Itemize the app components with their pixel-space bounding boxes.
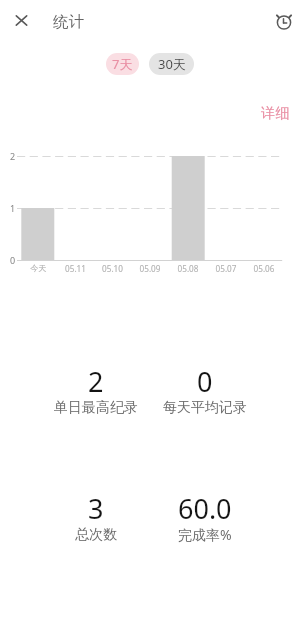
staticText: 05.09 (131, 263, 169, 274)
button[interactable]: 2 (41, 363, 150, 413)
button[interactable]: 3 (41, 490, 150, 540)
staticText: 7天 (112, 55, 133, 73)
button[interactable]: Close (8, 7, 35, 34)
staticText: 3 (88, 490, 104, 527)
staticText: 60.0 (178, 490, 232, 527)
staticText: 05.08 (169, 263, 207, 274)
staticText: 0 (197, 363, 213, 400)
staticText: 每天平均记录 (163, 399, 247, 417)
staticText: 完成率% (178, 526, 232, 545)
staticText: 05.06 (245, 263, 283, 274)
button[interactable]: 详细 (261, 104, 290, 122)
staticText: 详细 (261, 104, 290, 122)
button[interactable]: 0 (150, 363, 259, 413)
staticText: 单日最高纪录 (54, 399, 138, 417)
staticText: 30天 (158, 55, 186, 73)
staticText: 0 (10, 254, 16, 266)
button[interactable]: 60.0 (150, 490, 259, 540)
staticText: 2 (10, 150, 16, 162)
staticText: 今天 (20, 263, 57, 273)
staticText: 05.07 (207, 263, 245, 274)
staticText: 1 (10, 202, 16, 214)
staticText: 2 (88, 363, 104, 400)
staticText: 总次数 (75, 526, 117, 544)
staticText: 统计 (53, 12, 84, 32)
button[interactable]: Reminder (270, 8, 298, 36)
button[interactable]: 30天 (149, 53, 194, 75)
staticText: 05.11 (57, 263, 94, 274)
staticText: 05.10 (94, 263, 131, 274)
button[interactable]: 7天 (106, 53, 139, 75)
